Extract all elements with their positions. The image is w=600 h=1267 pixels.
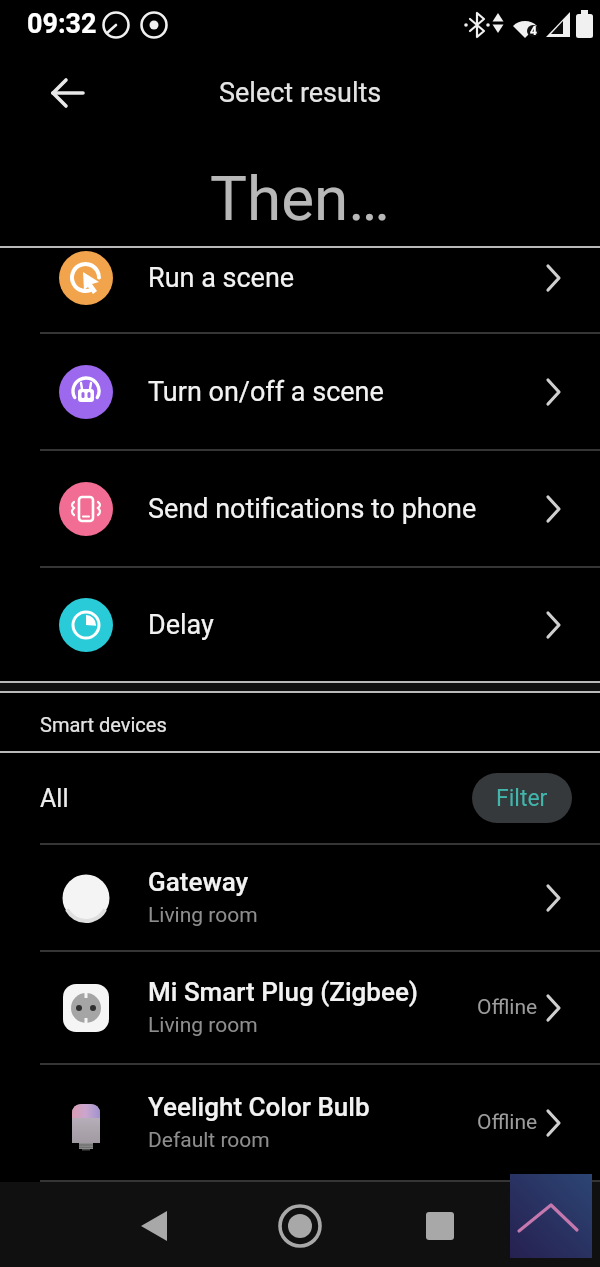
staticText: Run a scene [148, 262, 546, 294]
staticText: Then… [210, 162, 390, 235]
button[interactable]: Filter [472, 773, 572, 823]
staticText: Select results [219, 77, 382, 109]
staticText: Offline [477, 1110, 538, 1135]
staticText: Smart devices [40, 713, 167, 736]
button[interactable]: Delay [0, 568, 600, 681]
button[interactable]: Run a scene [0, 248, 600, 332]
button[interactable] [510, 1174, 592, 1258]
button[interactable] [200, 1182, 400, 1267]
staticText: Delay [148, 609, 546, 641]
staticText: All [40, 784, 69, 813]
button[interactable] [400, 1182, 600, 1267]
button[interactable]: Mi Smart Plug (Zigbee) [0, 952, 600, 1063]
button[interactable]: Turn on/off a scene [0, 334, 600, 449]
staticText: Living room [148, 903, 258, 928]
button[interactable] [0, 1182, 200, 1267]
staticText: Living room [148, 1013, 258, 1038]
staticText: Offline [477, 995, 538, 1020]
button[interactable]: Send notifications to phone [0, 451, 600, 566]
staticText: Mi Smart Plug (Zigbee) [148, 977, 419, 1007]
button[interactable]: Gateway [0, 845, 600, 950]
staticText: Default room [148, 1128, 270, 1153]
button[interactable] [50, 75, 86, 111]
button[interactable]: Yeelight Color Bulb [0, 1065, 600, 1180]
staticText: Yeelight Color Bulb [148, 1092, 370, 1122]
staticText: 09:32 [27, 8, 97, 40]
staticText: 4 [530, 24, 537, 38]
staticText: Gateway [148, 867, 249, 897]
staticText: Turn on/off a scene [148, 376, 546, 408]
staticText: Send notifications to phone [148, 493, 546, 525]
staticText: Filter [496, 785, 548, 812]
